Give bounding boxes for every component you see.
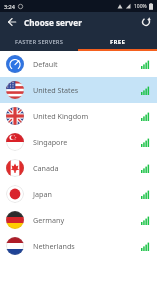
button[interactable]: FREE (78, 32, 157, 51)
button[interactable]: United States (0, 77, 157, 103)
button[interactable]: Default (0, 51, 157, 77)
staticText: Netherlands (33, 241, 75, 251)
staticText: Default (33, 59, 58, 69)
button[interactable]: Canada (0, 155, 157, 181)
staticText: 100% (134, 3, 147, 10)
staticText: United Kingdom (33, 111, 89, 121)
button[interactable]: FASTER SERVERS (0, 32, 78, 51)
button[interactable]: United Kingdom (0, 103, 157, 129)
staticText: Singapore (33, 137, 68, 147)
staticText: Choose server (24, 17, 82, 28)
button[interactable] (0, 12, 24, 32)
staticText: 3:24 (4, 3, 15, 10)
button[interactable]: Netherlands (0, 233, 157, 259)
staticText: FREE (110, 38, 126, 46)
button[interactable]: Germany (0, 207, 157, 233)
button[interactable]: Singapore (0, 129, 157, 155)
staticText: FASTER SERVERS (15, 38, 64, 46)
button[interactable]: Japan (0, 181, 157, 207)
staticText: Germany (33, 215, 65, 225)
staticText: Canada (33, 163, 59, 173)
staticText: United States (33, 85, 79, 95)
button[interactable] (135, 12, 157, 32)
staticText: Japan (33, 189, 52, 199)
